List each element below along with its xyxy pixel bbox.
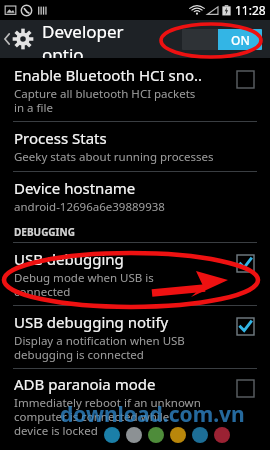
button[interactable]: Process Stats [0, 122, 270, 171]
button[interactable]: Enable Bluetooth HCI sno.. [0, 58, 270, 121]
staticText: Process Stats [14, 128, 107, 148]
button[interactable]: Enable Bluetooth HCI sno.. toggle [237, 71, 254, 88]
button[interactable]: ADB paranoia mode toggle [237, 380, 254, 397]
button[interactable]: Navigate up [0, 24, 36, 54]
button[interactable]: USB debugging [0, 243, 270, 305]
button[interactable]: Device hostname [0, 172, 270, 221]
staticText: Enable Bluetooth HCI sno.. [14, 65, 203, 85]
staticText: android-12696a6e39889938 [14, 199, 165, 215]
staticText: Display a notification when USB debuggin… [14, 333, 185, 362]
staticText: USB debugging notify [14, 312, 169, 332]
staticText: ON [231, 32, 250, 48]
staticText: USB debugging [14, 249, 124, 269]
staticText: ADB paranoia mode [14, 374, 156, 394]
button[interactable]: ADB paranoia mode [0, 369, 270, 444]
staticText: Debug mode when USB is connected [14, 270, 154, 299]
staticText: Device hostname [14, 178, 136, 198]
staticText: download.com.vn [60, 400, 245, 429]
staticText: 11:28 [235, 2, 266, 18]
button[interactable]: USB debugging notify toggle [237, 318, 254, 335]
staticText: DEBUGGING [14, 225, 75, 239]
staticText: Geeky stats about running processes [14, 149, 214, 165]
staticText: Developer optio… [42, 20, 182, 58]
button[interactable]: USB debugging toggle [237, 255, 254, 272]
button[interactable]: ON [182, 29, 262, 50]
button[interactable]: USB debugging notify [0, 306, 270, 368]
staticText: Capture all bluetooth HCI packets in a f… [14, 86, 196, 115]
staticText: Immediately reboot if an unknown compute… [14, 395, 201, 438]
